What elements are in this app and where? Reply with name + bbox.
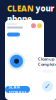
staticText: phone faster xyxy=(7,14,32,35)
staticText: Cleanup Complete xyxy=(38,56,56,67)
staticText: SCAN STORAGE xyxy=(8,84,26,95)
button[interactable]: SCAN STORAGE xyxy=(5,86,30,93)
staticText: your xyxy=(35,3,54,14)
staticText: ✓ xyxy=(44,82,51,91)
staticText: CLEAN xyxy=(7,3,34,14)
